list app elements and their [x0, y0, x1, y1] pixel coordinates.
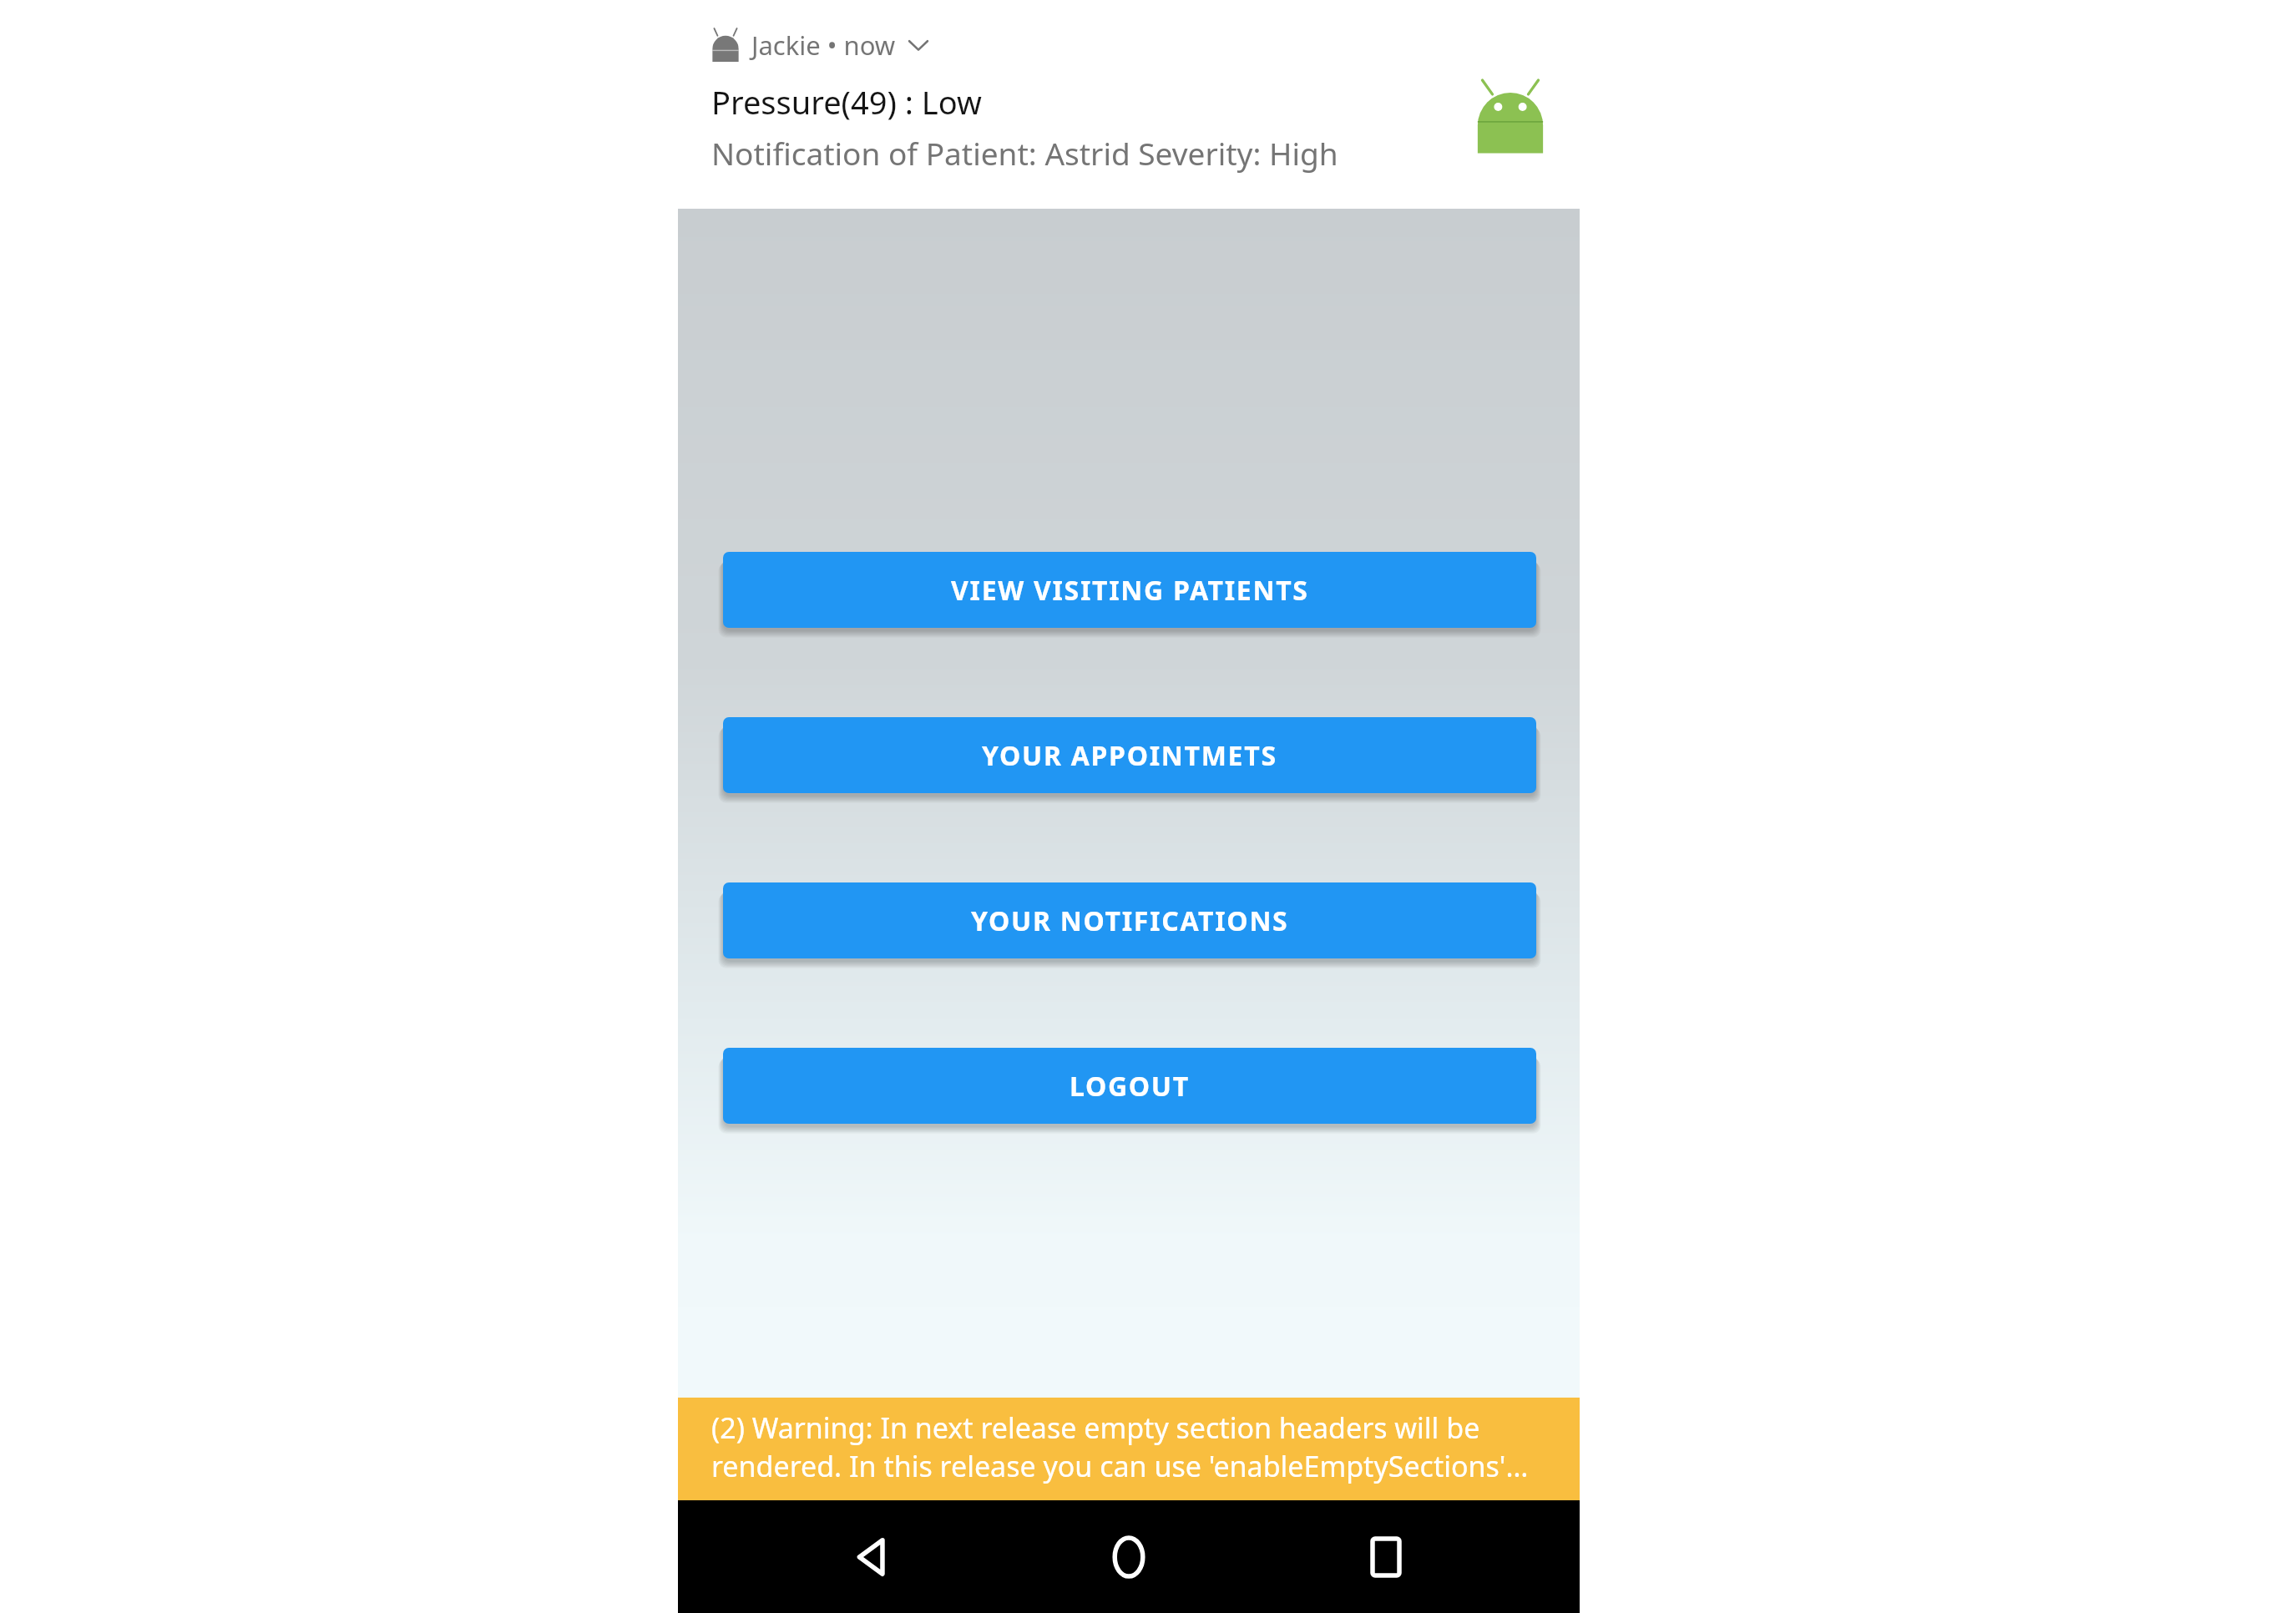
staticText: YOUR NOTIFICATIONS — [971, 903, 1289, 939]
staticText: Pressure(49) : Low — [711, 80, 982, 124]
button[interactable]: Recent apps — [1323, 1500, 1449, 1613]
staticText: Notification of Patient: Astrid Severity… — [711, 132, 1338, 174]
button[interactable]: LOGOUT — [723, 1048, 1536, 1124]
button[interactable]: Back — [810, 1500, 935, 1613]
staticText: YOUR APPOINTMETS — [982, 737, 1277, 774]
button[interactable]: YOUR APPOINTMETS — [723, 717, 1536, 793]
staticText: (2) Warning: In next release empty secti… — [711, 1408, 1570, 1485]
button[interactable]: YOUR NOTIFICATIONS — [723, 882, 1536, 958]
staticText: VIEW VISITING PATIENTS — [951, 572, 1309, 609]
button[interactable]: VIEW VISITING PATIENTS — [723, 552, 1536, 628]
button[interactable]: Home — [1066, 1500, 1191, 1613]
staticText: LOGOUT — [1070, 1068, 1190, 1105]
staticText: Jackie • now — [751, 28, 896, 63]
